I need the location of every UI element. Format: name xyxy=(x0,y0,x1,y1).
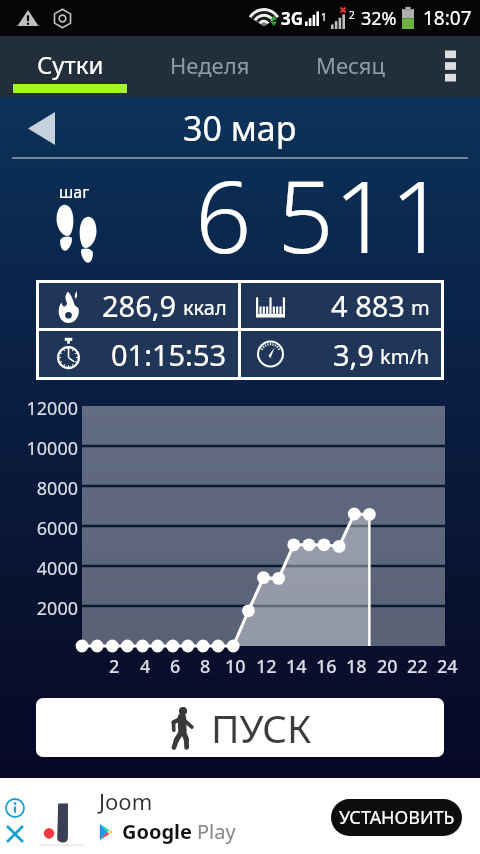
staticText: 6 xyxy=(170,654,181,679)
staticText: 20 xyxy=(377,654,398,679)
button[interactable]: ПУСК xyxy=(36,698,444,757)
button[interactable]: 4 883 xyxy=(241,283,441,328)
button[interactable]: УСТАНОВИТЬ xyxy=(331,799,462,836)
staticText: 286,9 xyxy=(102,286,177,325)
button[interactable]: Previous day xyxy=(16,103,66,153)
staticText: шаг xyxy=(59,181,90,203)
staticText: 4000 xyxy=(36,556,78,581)
staticText: 2000 xyxy=(36,596,78,621)
staticText: 6 511 xyxy=(195,147,447,259)
button[interactable]: Close ad xyxy=(4,823,26,845)
staticText: m xyxy=(411,294,430,321)
staticText: 10000 xyxy=(26,436,78,461)
staticText: ккал xyxy=(183,294,227,321)
staticText: 8 xyxy=(200,654,211,679)
button[interactable]: Ad info xyxy=(4,797,26,819)
staticText: 8000 xyxy=(36,476,78,501)
staticText: Joom xyxy=(99,786,153,816)
button[interactable]: More options xyxy=(420,36,480,97)
staticText: ПУСК xyxy=(211,701,312,754)
staticText: 3G xyxy=(281,7,304,30)
staticText: 18:07 xyxy=(423,5,472,31)
staticText: 16 xyxy=(316,654,337,679)
button[interactable]: Сутки xyxy=(0,36,140,97)
button[interactable]: 286,9 xyxy=(39,283,238,328)
staticText: 18 xyxy=(346,654,367,679)
staticText: 30 мар xyxy=(183,105,297,151)
staticText: УСТАНОВИТЬ xyxy=(339,805,455,830)
staticText: 1 xyxy=(321,10,327,24)
button[interactable]: 3,9 xyxy=(241,331,441,377)
staticText: 4 883 xyxy=(331,286,405,325)
staticText: km/h xyxy=(380,343,430,370)
staticText: Play xyxy=(197,818,236,845)
staticText: 2 xyxy=(349,8,355,22)
button[interactable]: 01:15:53 xyxy=(39,331,238,377)
staticText: 32% xyxy=(361,6,397,31)
staticText: 01:15:53 xyxy=(111,335,227,374)
staticText: 22 xyxy=(407,654,428,679)
staticText: 12 xyxy=(256,654,277,679)
staticText: 3,9 xyxy=(333,335,374,374)
staticText: Google xyxy=(122,818,193,845)
staticText: Месяц xyxy=(316,50,385,80)
staticText: 6000 xyxy=(36,516,78,541)
staticText: 2 xyxy=(109,654,120,679)
staticText: 14 xyxy=(286,654,307,679)
button[interactable]: Месяц xyxy=(280,36,420,97)
button[interactable]: Неделя xyxy=(140,36,280,97)
staticText: Сутки xyxy=(37,48,104,81)
staticText: Неделя xyxy=(170,50,250,80)
staticText: 4 xyxy=(140,654,151,679)
staticText: 10 xyxy=(225,654,246,679)
staticText: 24 xyxy=(437,654,458,679)
staticText: 12000 xyxy=(26,396,78,421)
